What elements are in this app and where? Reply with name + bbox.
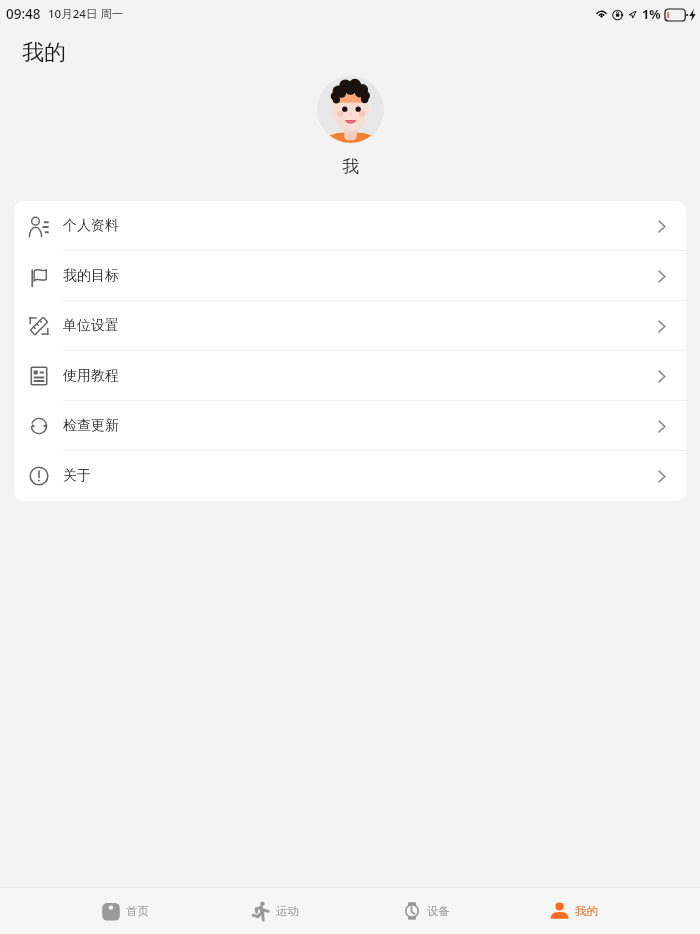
button[interactable]: 单位设置: [14, 301, 686, 351]
staticText: 09:48: [6, 5, 41, 23]
staticText: 单位设置: [63, 317, 119, 335]
staticText: 我的: [575, 904, 598, 918]
button[interactable]: 我的: [525, 888, 700, 934]
staticText: 我的目标: [63, 267, 119, 285]
staticText: 设备: [427, 904, 450, 918]
button[interactable]: 设备: [350, 888, 525, 934]
staticText: 我: [342, 156, 359, 177]
staticText: 检查更新: [63, 417, 119, 435]
button[interactable]: Avatar: [317, 76, 384, 143]
staticText: 我的: [22, 39, 66, 67]
button[interactable]: 个人资料: [14, 201, 686, 251]
staticText: 个人资料: [63, 217, 119, 235]
button[interactable]: 运动: [175, 888, 350, 934]
staticText: 首页: [126, 904, 149, 918]
button[interactable]: 首页: [0, 888, 175, 934]
staticText: 1%: [642, 6, 661, 23]
staticText: 使用教程: [63, 367, 119, 385]
staticText: 10月24日 周一: [48, 6, 124, 22]
button[interactable]: 检查更新: [14, 401, 686, 451]
staticText: 关于: [63, 467, 91, 485]
button[interactable]: 关于: [14, 451, 686, 501]
staticText: 运动: [276, 904, 299, 918]
button[interactable]: 使用教程: [14, 351, 686, 401]
button[interactable]: 我的目标: [14, 251, 686, 301]
